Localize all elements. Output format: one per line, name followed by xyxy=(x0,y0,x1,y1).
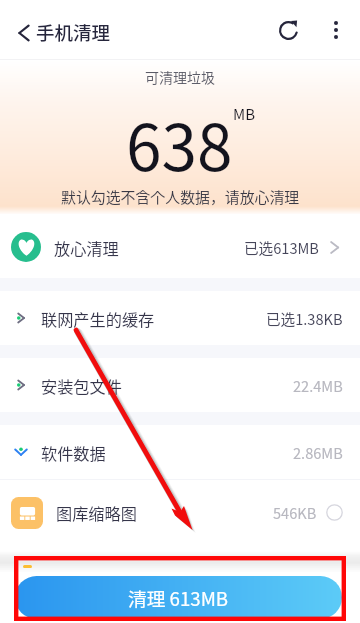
staticText: 可清理垃圾 xyxy=(145,67,215,87)
button[interactable]: 联网产生的缓存 xyxy=(0,291,360,345)
button[interactable]: More options xyxy=(315,7,357,53)
staticText: 546KB xyxy=(273,502,317,523)
staticText: 安装包文件 xyxy=(41,374,122,397)
staticText: 默认勾选不含个人数据，请放心清理 xyxy=(61,186,300,208)
button[interactable]: 清理 613MB xyxy=(15,576,342,619)
staticText: 联网产生的缓存 xyxy=(41,307,155,330)
staticText: 22.4MB xyxy=(293,375,343,396)
staticText: MB xyxy=(233,103,256,125)
button[interactable]: 图库缩略图 xyxy=(0,480,360,545)
button[interactable]: 软件数据 xyxy=(0,425,360,479)
staticText: 清理 613MB xyxy=(128,584,229,611)
staticText: 手机清理 xyxy=(36,19,111,46)
button[interactable]: 安装包文件 xyxy=(0,358,360,412)
button[interactable]: Back xyxy=(5,10,41,56)
staticText: 软件数据 xyxy=(41,441,106,464)
staticText: 已选613MB xyxy=(244,237,319,258)
staticText: 638 xyxy=(126,97,233,190)
staticText: 图库缩略图 xyxy=(56,501,137,524)
button[interactable]: 放心清理 xyxy=(0,216,360,278)
staticText: 已选1.38KB xyxy=(266,308,343,329)
staticText: 放心清理 xyxy=(54,236,119,259)
button[interactable]: Refresh xyxy=(265,7,311,53)
staticText: 2.86MB xyxy=(293,442,343,463)
